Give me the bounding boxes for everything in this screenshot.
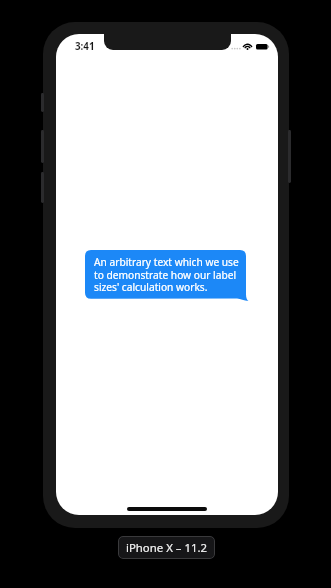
button[interactable]: iPhone X – 11.2 xyxy=(118,536,215,559)
other: Status icons xyxy=(231,42,271,51)
staticText: An arbitrary text which we use to demons… xyxy=(94,255,240,294)
staticText: iPhone X – 11.2 xyxy=(126,540,208,556)
button[interactable]: An arbitrary text which we use to demons… xyxy=(85,250,250,302)
staticText: 3:41 xyxy=(75,40,95,53)
